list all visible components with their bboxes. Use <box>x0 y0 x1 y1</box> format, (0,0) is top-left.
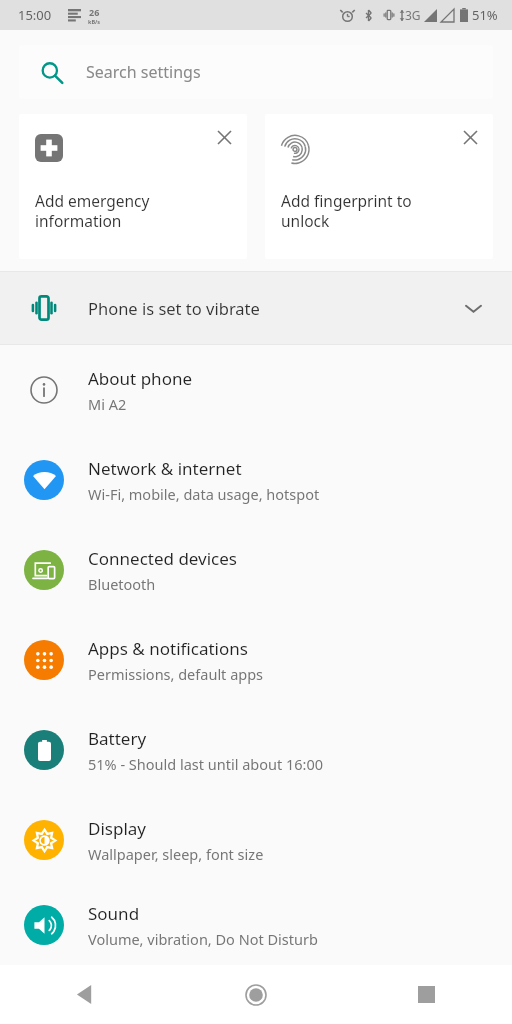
button[interactable]: Dismiss <box>457 124 483 150</box>
button[interactable]: Connected devices <box>0 525 512 615</box>
staticText: Display <box>88 817 146 840</box>
button[interactable]: Dismiss <box>211 124 237 150</box>
staticText: Phone is set to vibrate <box>88 297 260 319</box>
staticText: 3G <box>405 7 421 23</box>
staticText: Mi A2 <box>88 394 127 414</box>
staticText: Apps & notifications <box>88 637 248 660</box>
button[interactable]: Sound <box>0 885 512 965</box>
button[interactable]: Recent apps <box>341 965 512 1024</box>
staticText: 51% - Should last until about 16:00 <box>88 754 324 774</box>
staticText: 15:00 <box>18 6 52 24</box>
staticText: 26 <box>89 6 100 18</box>
button[interactable]: Dismiss <box>19 114 247 259</box>
staticText: Volume, vibration, Do Not Disturb <box>88 929 318 949</box>
button[interactable]: Home <box>170 965 341 1024</box>
staticText: Battery <box>88 727 147 750</box>
staticText: Add fingerprint to unlock <box>281 190 412 232</box>
staticText: Search settings <box>86 61 201 83</box>
staticText: kB/s <box>88 18 101 25</box>
button[interactable]: Battery <box>0 705 512 795</box>
staticText: About phone <box>88 367 193 390</box>
button[interactable]: Phone is set to vibrate <box>0 272 512 344</box>
staticText: Connected devices <box>88 547 238 570</box>
staticText: Add emergency information <box>35 190 150 232</box>
staticText: Sound <box>88 902 140 925</box>
staticText: Bluetooth <box>88 574 156 594</box>
staticText: Network & internet <box>88 457 242 480</box>
button[interactable]: Back <box>0 965 170 1024</box>
button[interactable]: About phone <box>0 345 512 435</box>
staticText: Wallpaper, sleep, font size <box>88 844 264 864</box>
staticText: 51% <box>472 6 498 24</box>
button[interactable]: Search settings <box>19 45 493 99</box>
staticText: Wi-Fi, mobile, data usage, hotspot <box>88 484 320 504</box>
button[interactable]: Dismiss <box>265 114 493 259</box>
button[interactable]: Network & internet <box>0 435 512 525</box>
button[interactable]: Apps & notifications <box>0 615 512 705</box>
staticText: Permissions, default apps <box>88 664 264 684</box>
button[interactable]: Display <box>0 795 512 885</box>
